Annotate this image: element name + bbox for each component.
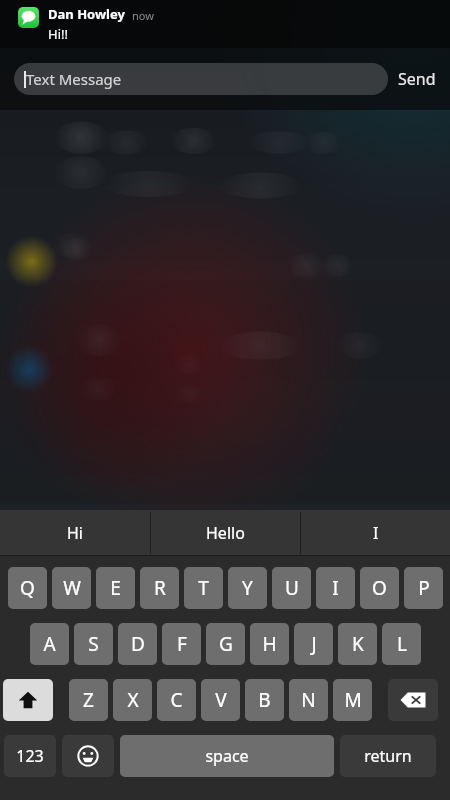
button[interactable]: X xyxy=(113,679,152,721)
button[interactable]: H xyxy=(250,623,289,665)
staticText: Hi xyxy=(67,522,83,544)
button[interactable]: T xyxy=(184,567,223,609)
button[interactable]: return xyxy=(340,735,436,777)
button[interactable]: Emoji xyxy=(62,735,114,777)
staticText: 123 xyxy=(16,745,44,767)
staticText: K xyxy=(352,631,364,657)
button[interactable]: E xyxy=(96,567,135,609)
button[interactable]: G xyxy=(206,623,245,665)
button[interactable]: U xyxy=(272,567,311,609)
button[interactable]: K xyxy=(338,623,377,665)
staticText: Dan Howley xyxy=(48,5,125,23)
staticText: now xyxy=(132,8,154,23)
staticText: G xyxy=(219,631,233,657)
button[interactable]: F xyxy=(162,623,201,665)
button[interactable]: Y xyxy=(228,567,267,609)
staticText: L xyxy=(397,631,407,657)
button[interactable]: Text Message xyxy=(14,63,388,95)
button[interactable]: Q xyxy=(8,567,47,609)
staticText: Text Message xyxy=(26,69,122,89)
button[interactable]: R xyxy=(140,567,179,609)
button[interactable]: N xyxy=(289,679,328,721)
staticText: X xyxy=(127,687,139,713)
staticText: C xyxy=(170,687,183,713)
button[interactable]: L xyxy=(382,623,421,665)
button[interactable]: B xyxy=(245,679,284,721)
staticText: R xyxy=(154,575,166,601)
staticText: N xyxy=(301,687,316,713)
staticText: Z xyxy=(83,687,94,713)
button[interactable]: Z xyxy=(69,679,108,721)
staticText: F xyxy=(177,631,187,657)
staticText: Hi!! xyxy=(48,25,68,43)
button[interactable]: Send xyxy=(398,68,436,90)
staticText: A xyxy=(43,631,56,657)
staticText: T xyxy=(198,575,209,601)
staticText: return xyxy=(364,745,412,767)
button[interactable]: C xyxy=(157,679,196,721)
staticText: Send xyxy=(398,68,436,90)
staticText: J xyxy=(311,631,317,657)
staticText: W xyxy=(63,575,81,601)
staticText: H xyxy=(262,631,277,657)
staticText: S xyxy=(88,631,99,657)
button[interactable]: I xyxy=(301,510,450,556)
button[interactable]: space xyxy=(120,735,334,777)
staticText: P xyxy=(418,575,430,601)
button[interactable]: J xyxy=(294,623,333,665)
button[interactable]: 123 xyxy=(4,735,56,777)
button[interactable]: D xyxy=(118,623,157,665)
staticText: I xyxy=(332,575,339,601)
staticText: E xyxy=(110,575,121,601)
button[interactable]: Hi xyxy=(0,510,150,556)
staticText: Q xyxy=(20,575,35,601)
staticText: U xyxy=(285,575,299,601)
staticText: space xyxy=(205,745,249,767)
staticText: D xyxy=(131,631,145,657)
button[interactable]: S xyxy=(74,623,113,665)
button[interactable]: Hello xyxy=(151,510,300,556)
staticText: O xyxy=(372,575,387,601)
button[interactable]: Shift xyxy=(3,679,53,721)
button[interactable]: O xyxy=(360,567,399,609)
button[interactable]: W xyxy=(52,567,91,609)
staticText: I xyxy=(373,522,379,544)
button[interactable]: M xyxy=(333,679,372,721)
staticText: Y xyxy=(242,575,253,601)
button[interactable]: I xyxy=(316,567,355,609)
staticText: B xyxy=(258,687,271,713)
button[interactable]: A xyxy=(30,623,69,665)
staticText: V xyxy=(215,687,227,713)
staticText: Hello xyxy=(206,522,245,544)
staticText: M xyxy=(344,687,362,713)
button[interactable]: V xyxy=(201,679,240,721)
button[interactable]: P xyxy=(404,567,443,609)
button[interactable]: Dan Howley xyxy=(0,0,450,48)
button[interactable]: Backspace xyxy=(388,679,438,721)
